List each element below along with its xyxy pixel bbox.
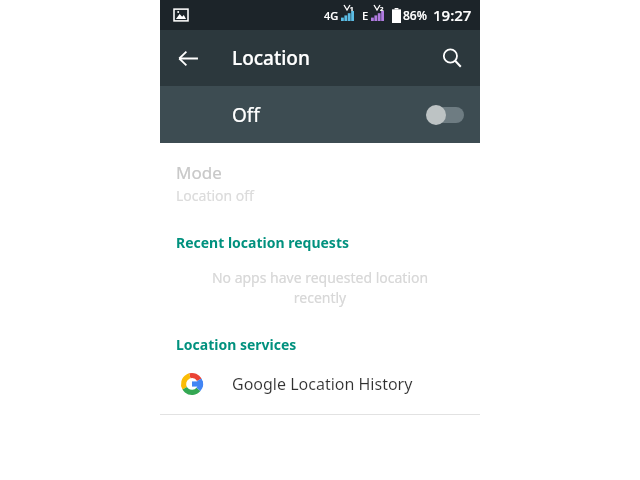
staticText: Location off xyxy=(176,186,254,205)
staticText: 2 xyxy=(380,5,384,13)
staticText: Recent location requests xyxy=(176,233,349,252)
button[interactable]: Off xyxy=(160,86,480,143)
staticText: E xyxy=(362,8,369,23)
button[interactable]: Search xyxy=(432,38,472,78)
button[interactable]: Mode xyxy=(160,157,480,209)
staticText: Off xyxy=(232,102,260,128)
staticText: 1 xyxy=(350,5,354,13)
button[interactable]: Back xyxy=(168,38,208,78)
staticText: 19:27 xyxy=(433,5,472,25)
staticText: 86% xyxy=(403,7,427,23)
staticText: Location services xyxy=(176,335,297,354)
staticText: Google Location History xyxy=(232,373,413,395)
staticText: Location xyxy=(232,45,310,71)
button[interactable]: Google Location History xyxy=(160,362,480,406)
staticText: No apps have requested location recently xyxy=(184,268,456,307)
staticText: 4G xyxy=(324,8,339,23)
staticText: Mode xyxy=(176,161,222,184)
